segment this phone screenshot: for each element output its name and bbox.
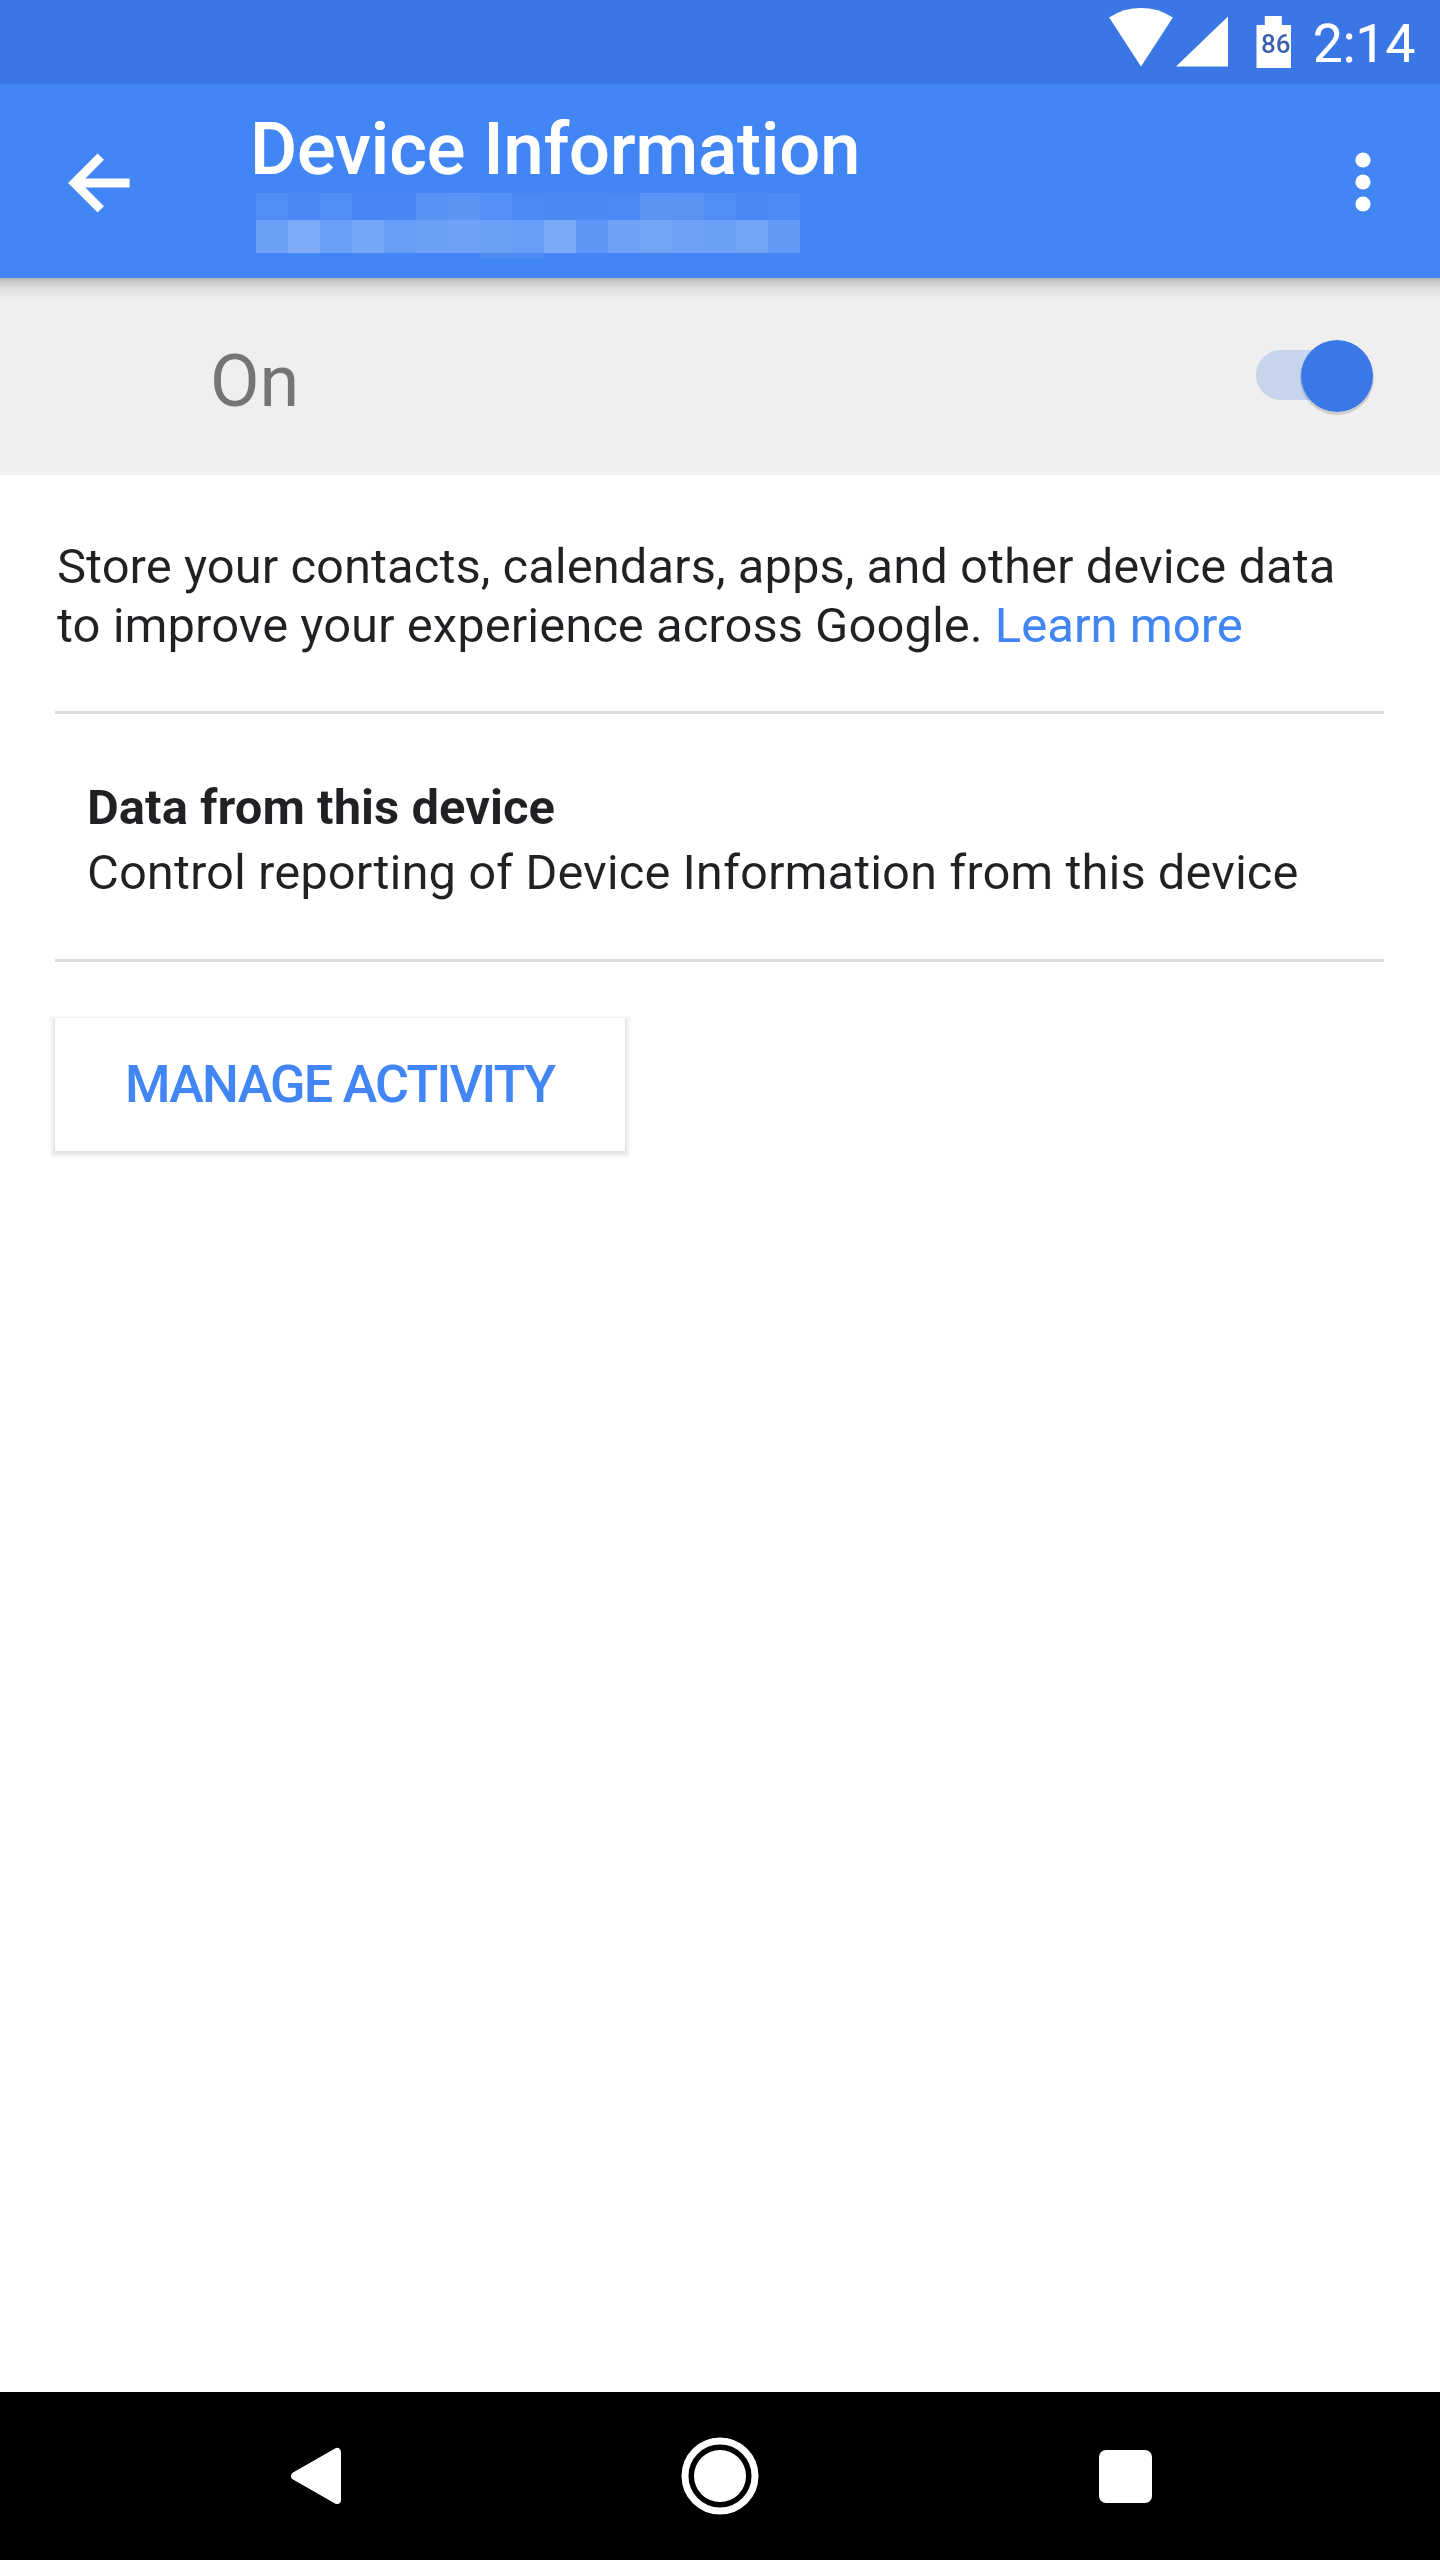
button[interactable]: Back: [236, 2396, 396, 2556]
staticText: Control reporting of Device Information …: [87, 844, 1299, 901]
button[interactable]: Recent apps: [1045, 2396, 1205, 2556]
button[interactable]: Data from this device: [0, 714, 1440, 960]
staticText: Device Information: [250, 107, 861, 191]
button[interactable]: Home: [640, 2396, 800, 2556]
button[interactable]: More options: [1303, 122, 1423, 242]
button[interactable]: MANAGE ACTIVITY: [55, 1018, 625, 1151]
staticText: Data from this device: [87, 779, 555, 836]
staticText: 86: [1261, 29, 1291, 59]
staticText: Store your contacts, calendars, apps, an…: [57, 538, 1365, 654]
button[interactable]: On: [0, 278, 1440, 475]
staticText: MANAGE ACTIVITY: [125, 1054, 555, 1115]
staticText: On: [210, 339, 300, 423]
button[interactable]: Navigate up: [39, 123, 159, 243]
staticText: 2:14: [1313, 13, 1416, 75]
